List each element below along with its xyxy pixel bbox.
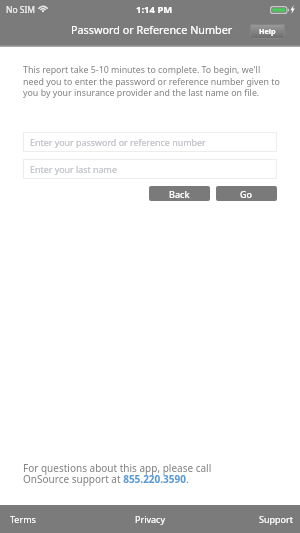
- staticText: Terms: [10, 513, 36, 525]
- button[interactable]: Help: [250, 24, 285, 39]
- other: Wi-Fi: [38, 4, 48, 12]
- staticText: Go: [240, 188, 253, 200]
- staticText: This report take 5-10 minutes to complet…: [23, 64, 281, 98]
- staticText: Privacy: [135, 513, 166, 525]
- button[interactable]: Enter your last name: [23, 159, 277, 179]
- staticText: Enter your password or reference number: [30, 136, 206, 148]
- button[interactable]: Terms: [0, 505, 100, 533]
- button[interactable]: Back: [149, 186, 210, 201]
- staticText: Support: [259, 513, 293, 525]
- staticText: 1:14 PM: [136, 3, 173, 16]
- staticText: No SIM: [6, 4, 36, 16]
- button[interactable]: Privacy: [100, 505, 200, 533]
- staticText: Help: [259, 26, 276, 36]
- button[interactable]: Enter your password or reference number: [23, 132, 277, 152]
- staticText: For questions about this app, please cal…: [23, 461, 212, 486]
- button[interactable]: Support: [200, 505, 300, 533]
- button[interactable]: Go: [216, 186, 277, 201]
- other: Battery: [270, 6, 289, 14]
- staticText: Back: [169, 188, 190, 200]
- staticText: Password or Reference Number: [71, 22, 233, 37]
- staticText: Enter your last name: [30, 163, 117, 175]
